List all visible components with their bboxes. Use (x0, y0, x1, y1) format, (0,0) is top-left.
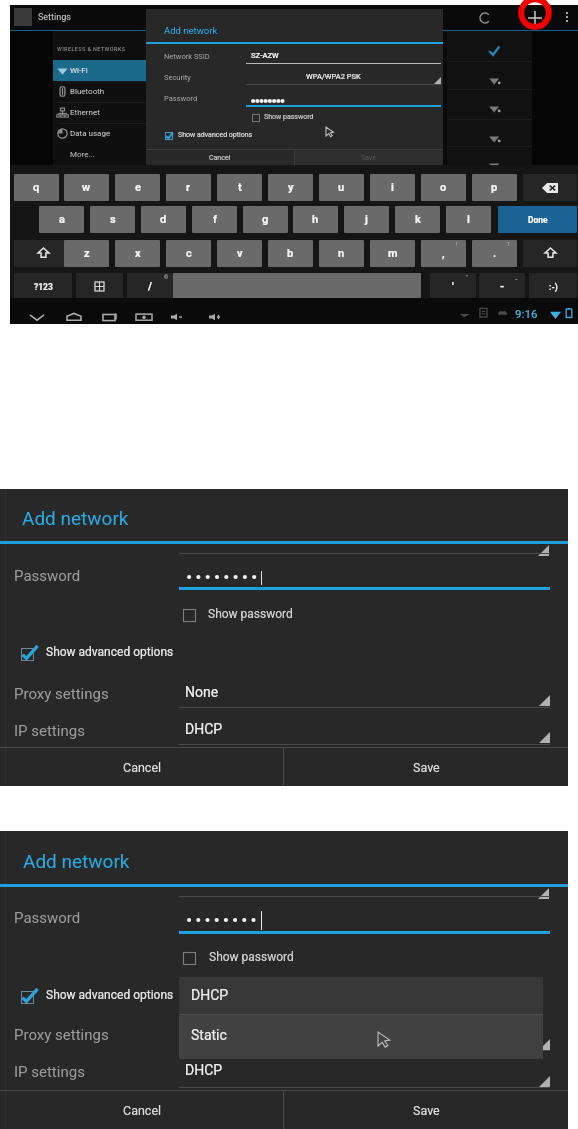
button[interactable]: c (166, 240, 211, 267)
button[interactable]: :-) (529, 273, 577, 300)
staticText: z (84, 247, 90, 260)
staticText: n (338, 247, 345, 260)
button[interactable]: i (370, 174, 415, 201)
button[interactable]: ' (430, 273, 476, 300)
button[interactable] (21, 985, 40, 1004)
button[interactable] (21, 642, 40, 661)
staticText: Show advanced options (178, 131, 253, 139)
button[interactable]: g (243, 206, 288, 233)
staticText: Settings (38, 12, 71, 23)
button[interactable]: a (39, 206, 84, 233)
staticText: Save (413, 760, 440, 775)
staticText: Add network (23, 850, 130, 872)
button[interactable] (14, 240, 72, 267)
staticText: Password (14, 909, 81, 927)
button[interactable]: ?123 (14, 273, 72, 300)
staticText: DHCP (185, 721, 223, 737)
staticText: Show advanced options (46, 645, 174, 659)
staticText: Data usage (70, 129, 111, 138)
button[interactable]: f (192, 206, 237, 233)
button[interactable]: More options (560, 9, 574, 23)
staticText: c (186, 247, 192, 260)
staticText: b (287, 247, 294, 260)
button[interactable]: v (217, 240, 262, 267)
button[interactable]: s (90, 206, 135, 233)
button[interactable] (76, 273, 123, 300)
button[interactable]: Done (498, 206, 577, 233)
staticText: p (491, 181, 498, 194)
button[interactable]: / (127, 273, 174, 300)
button[interactable] (53, 81, 146, 102)
button[interactable]: l (446, 206, 491, 233)
button[interactable]: r (166, 174, 211, 201)
button[interactable]: Screenshot (135, 308, 153, 326)
staticText: Save (413, 1103, 440, 1118)
staticText: Show password (264, 113, 314, 121)
staticText: - (500, 280, 505, 293)
button[interactable]: Save (284, 748, 568, 786)
button[interactable]: y (268, 174, 313, 201)
button[interactable] (53, 60, 146, 81)
button[interactable]: w (64, 174, 109, 201)
button[interactable] (53, 144, 146, 164)
button[interactable]: t (217, 174, 262, 201)
button[interactable]: x (115, 240, 160, 267)
button[interactable]: , (421, 240, 466, 267)
staticText: f (213, 213, 217, 226)
button[interactable] (165, 132, 173, 140)
button[interactable]: b (268, 240, 313, 267)
button[interactable] (183, 603, 202, 622)
button[interactable]: Volume down (169, 308, 187, 326)
staticText: _ (515, 274, 518, 280)
button[interactable]: Cancel (0, 1091, 284, 1129)
staticText: ! (456, 241, 458, 247)
button[interactable]: Static (179, 1015, 543, 1059)
button[interactable]: o (421, 174, 466, 201)
button[interactable] (53, 102, 146, 123)
button[interactable]: h (293, 206, 338, 233)
button[interactable]: n (319, 240, 364, 267)
staticText: WPA/WPA2 PSK (306, 72, 361, 81)
staticText: Show password (208, 607, 293, 621)
staticText: Show password (209, 950, 294, 964)
staticText: DHCP (191, 987, 229, 1003)
button[interactable]: j (344, 206, 389, 233)
staticText: e (135, 181, 141, 194)
button[interactable] (523, 174, 577, 201)
button[interactable] (252, 114, 260, 122)
button[interactable]: z (64, 240, 109, 267)
staticText: a (59, 213, 65, 226)
button[interactable]: Cancel (0, 748, 284, 786)
staticText: o (440, 181, 447, 194)
button[interactable]: Home (65, 308, 83, 326)
button[interactable]: Cancel (146, 150, 294, 165)
button[interactable] (183, 946, 202, 965)
button[interactable]: Recent apps (101, 308, 119, 326)
button[interactable]: . (472, 240, 517, 267)
button[interactable]: k (395, 206, 440, 233)
button[interactable] (523, 240, 577, 267)
staticText: :-) (549, 282, 558, 292)
button[interactable]: q (14, 174, 59, 201)
staticText: Password (14, 567, 81, 585)
button[interactable]: Refresh (478, 11, 492, 25)
button[interactable]: Save (294, 150, 443, 165)
button[interactable]: Save (284, 1091, 568, 1129)
button[interactable]: e (115, 174, 160, 201)
button[interactable]: Add network (527, 10, 543, 26)
staticText: ?123 (34, 282, 53, 292)
staticText: Cancel (123, 760, 162, 775)
staticText: r (186, 181, 191, 194)
button[interactable] (53, 123, 146, 144)
button[interactable]: d (141, 206, 186, 233)
button[interactable]: m (370, 240, 415, 267)
button[interactable]: DHCP (179, 977, 543, 1014)
staticText: t (238, 181, 242, 194)
button[interactable]: p (472, 174, 517, 201)
button[interactable]: u (319, 174, 364, 201)
button[interactable] (173, 273, 421, 300)
button[interactable]: Back (28, 308, 46, 326)
button[interactable]: - (479, 273, 525, 300)
button[interactable]: Volume up (207, 308, 225, 326)
staticText: DHCP (185, 1062, 223, 1078)
